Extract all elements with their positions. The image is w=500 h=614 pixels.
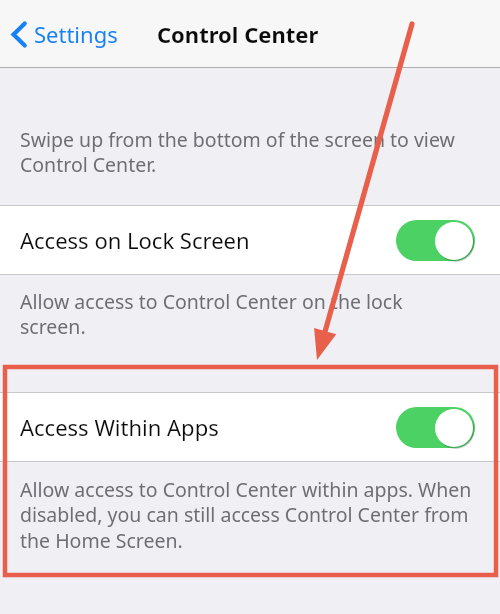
staticText: Settings xyxy=(34,19,118,49)
button[interactable]: Toggle switch, on xyxy=(396,407,475,448)
button[interactable]: Settings xyxy=(8,11,122,57)
button[interactable]: Toggle switch, on xyxy=(396,220,475,261)
staticText: Swipe up from the bottom of the screen t… xyxy=(20,126,472,178)
button[interactable]: Access on Lock Screen xyxy=(0,205,500,275)
staticText: Allow access to Control Center within ap… xyxy=(20,476,472,554)
staticText: Allow access to Control Center on the lo… xyxy=(20,288,472,340)
staticText: Access on Lock Screen xyxy=(20,225,250,255)
staticText: Access Within Apps xyxy=(20,412,219,442)
button[interactable]: Access Within Apps xyxy=(0,392,500,462)
staticText: Control Center xyxy=(157,19,319,49)
